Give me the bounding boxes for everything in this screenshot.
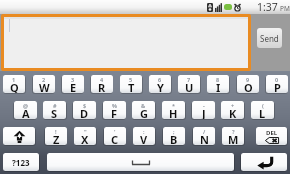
button[interactable]: ;	[163, 127, 185, 145]
staticText: N	[200, 132, 209, 145]
staticText: 0	[275, 76, 279, 83]
staticText: Q	[10, 80, 19, 93]
staticText: $	[83, 102, 87, 109]
staticText: T	[128, 80, 135, 93]
staticText: P	[274, 80, 281, 93]
staticText: B	[170, 132, 178, 145]
staticText: ?123	[12, 157, 30, 168]
staticText: D	[80, 106, 89, 119]
staticText: "	[84, 128, 87, 135]
staticText: ?	[232, 128, 235, 135]
button[interactable]: $	[73, 101, 96, 119]
staticText: *	[172, 102, 175, 109]
button[interactable]: Enter	[241, 153, 287, 171]
button[interactable]: 8	[207, 75, 229, 93]
staticText: Z	[53, 132, 60, 145]
staticText: 1	[12, 76, 16, 83]
staticText: (	[262, 102, 264, 109]
button[interactable]: '	[104, 127, 126, 145]
staticText: C	[111, 132, 119, 145]
staticText: Y	[157, 80, 164, 93]
staticText: O	[244, 80, 253, 93]
staticText: PM	[280, 4, 290, 13]
button[interactable]: 5	[120, 75, 142, 93]
staticText: -	[203, 102, 205, 109]
button[interactable]: Space	[47, 153, 234, 171]
button[interactable]: 7	[178, 75, 200, 93]
staticText: +	[231, 102, 235, 109]
button[interactable]: (	[251, 101, 274, 119]
staticText: Send	[260, 33, 279, 44]
button[interactable]: @	[14, 101, 37, 119]
staticText: 6	[158, 76, 162, 83]
button[interactable]: ?	[222, 127, 244, 145]
button[interactable]: 4	[91, 75, 113, 93]
staticText: 2	[42, 76, 46, 83]
staticText: %	[112, 102, 117, 109]
staticText: 5	[129, 76, 133, 83]
button[interactable]: #	[43, 101, 66, 119]
staticText: DEL	[266, 129, 278, 137]
button[interactable]: ?123	[3, 153, 39, 171]
staticText: H	[169, 106, 178, 119]
button[interactable]: /	[193, 127, 215, 145]
button[interactable]: %	[103, 101, 126, 119]
button[interactable]: *	[162, 101, 185, 119]
staticText: I	[216, 80, 221, 93]
button[interactable]: Shift	[3, 127, 35, 145]
staticText: F	[111, 106, 118, 119]
staticText: X	[81, 132, 89, 145]
staticText: 3	[71, 76, 75, 83]
staticText: K	[229, 106, 237, 119]
staticText: G	[140, 106, 148, 119]
button[interactable]: Delete	[256, 127, 287, 145]
staticText: /	[203, 128, 206, 135]
staticText: 9	[246, 76, 250, 83]
button[interactable]: !	[45, 127, 67, 145]
staticText: #	[53, 102, 57, 109]
staticText: J	[202, 106, 206, 119]
staticText: U	[185, 80, 194, 93]
staticText: L	[259, 106, 266, 119]
button[interactable]: 6	[149, 75, 171, 93]
staticText: A	[22, 106, 30, 119]
button[interactable]: 1	[3, 75, 25, 93]
staticText: M	[228, 132, 239, 145]
staticText: @	[23, 102, 28, 109]
staticText: S	[51, 106, 58, 119]
staticText: 4	[100, 76, 104, 83]
staticText: &	[141, 102, 146, 109]
staticText: !	[55, 128, 57, 135]
button[interactable]: &	[132, 101, 155, 119]
staticText: 1:37	[257, 0, 278, 14]
staticText: E	[70, 80, 77, 93]
staticText: W	[39, 80, 50, 93]
staticText: 7	[187, 76, 191, 83]
button[interactable]: :	[133, 127, 155, 145]
button[interactable]: +	[221, 101, 244, 119]
button[interactable]: "	[74, 127, 96, 145]
staticText: '	[114, 128, 116, 135]
staticText: 8	[216, 76, 220, 83]
button[interactable]: 0	[266, 75, 288, 93]
staticText: :	[143, 128, 145, 135]
button[interactable]: 3	[62, 75, 84, 93]
button[interactable]: 9	[237, 75, 259, 93]
button[interactable]: Send	[257, 28, 282, 48]
button[interactable]: 2	[33, 75, 55, 93]
button[interactable]: -	[192, 101, 215, 119]
staticText: R	[98, 80, 106, 93]
staticText: V	[140, 132, 148, 145]
staticText: ;	[173, 128, 175, 135]
